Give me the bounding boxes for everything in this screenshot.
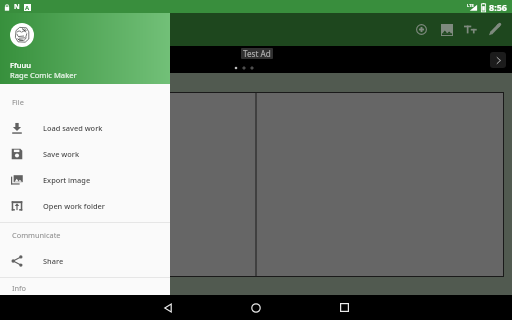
button[interactable]: Export image <box>0 167 170 193</box>
button[interactable]: Add panel <box>407 13 435 46</box>
button[interactable]: Add text <box>458 13 482 46</box>
button[interactable]: Load saved work <box>0 115 170 141</box>
staticText: Rage Comic Maker <box>10 70 77 80</box>
button[interactable]: Back <box>155 295 181 320</box>
staticText: A <box>25 4 30 11</box>
button[interactable]: Home <box>243 295 269 320</box>
button[interactable]: Insert image <box>435 13 458 46</box>
button[interactable]: Save work <box>0 141 170 167</box>
staticText: Save work <box>43 149 80 159</box>
button[interactable]: Profile picture <box>0 0 170 84</box>
button[interactable]: Profile picture <box>10 23 34 47</box>
staticText: Info <box>12 283 27 293</box>
staticText: Load saved work <box>43 123 103 133</box>
button[interactable]: Share <box>0 248 170 274</box>
staticText: Export image <box>43 175 91 185</box>
staticText: 8:56 <box>489 1 507 13</box>
button[interactable]: Recent apps <box>331 295 357 320</box>
staticText: File <box>12 97 24 107</box>
staticText: Communicate <box>12 230 61 240</box>
staticText: Open work folder <box>43 201 105 211</box>
button[interactable]: Open work folder <box>0 193 170 219</box>
button[interactable]: Next ad <box>490 52 506 68</box>
staticText: N <box>14 2 20 12</box>
staticText: Share <box>43 256 64 266</box>
button[interactable]: Draw <box>482 13 506 46</box>
staticText: LTE <box>467 3 474 8</box>
staticText: Ffuuu <box>10 60 32 70</box>
staticText: Test Ad <box>243 48 271 59</box>
